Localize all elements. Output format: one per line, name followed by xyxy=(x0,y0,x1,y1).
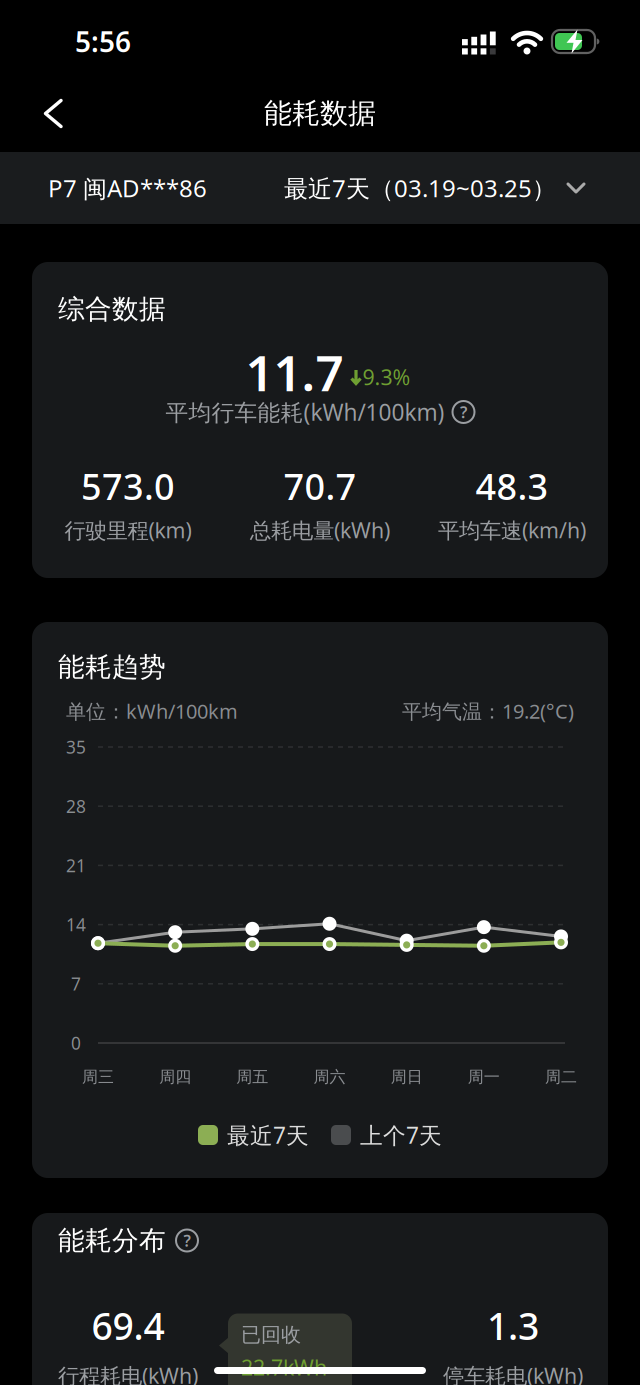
staticText: 周四 xyxy=(159,1067,191,1087)
staticText: 最近7天 xyxy=(227,1120,309,1150)
staticText: 行程耗电(kWh) xyxy=(58,1361,198,1385)
staticText: 平均气温：19.2(°C) xyxy=(402,698,574,724)
staticText: 已回收 xyxy=(241,1322,301,1347)
staticText: 48.3 xyxy=(475,462,548,510)
staticText: 7 xyxy=(71,972,81,995)
staticText: 9.3% xyxy=(362,363,410,391)
staticText: 周五 xyxy=(236,1067,268,1087)
staticText: 能耗分布 xyxy=(58,1224,166,1257)
staticText: 573.0 xyxy=(81,462,175,510)
staticText: ? xyxy=(460,401,467,423)
button[interactable]: Back xyxy=(0,76,64,150)
staticText: 平均车速(km/h) xyxy=(438,516,586,544)
staticText: 周日 xyxy=(391,1067,423,1087)
staticText: 0 xyxy=(71,1031,81,1054)
staticText: 单位：kWh/100km xyxy=(66,698,238,724)
staticText: 总耗电量(kWh) xyxy=(250,516,390,544)
staticText: 能耗趋势 xyxy=(58,651,166,683)
staticText: 35 xyxy=(66,735,86,758)
staticText: 28 xyxy=(66,795,86,818)
staticText: 周三 xyxy=(82,1067,114,1087)
staticText: 21 xyxy=(66,854,86,877)
button[interactable]: 帮助 xyxy=(176,1229,198,1251)
staticText: 1.3 xyxy=(487,1301,539,1350)
button[interactable]: 最近7天（03.19~03.25） xyxy=(284,172,640,204)
staticText: 最近7天（03.19~03.25） xyxy=(284,172,556,204)
button[interactable]: 帮助 xyxy=(452,401,474,423)
staticText: 综合数据 xyxy=(58,293,166,325)
staticText: 行驶里程(km) xyxy=(64,516,191,544)
staticText: 周六 xyxy=(313,1067,345,1087)
staticText: 上个7天 xyxy=(360,1120,442,1150)
staticText: 5:56 xyxy=(75,23,131,60)
staticText: ? xyxy=(183,1230,190,1251)
staticText: 周一 xyxy=(468,1067,500,1087)
staticText: 停车耗电(kWh) xyxy=(443,1361,583,1385)
staticText: 14 xyxy=(66,913,86,936)
staticText: 能耗数据 xyxy=(264,96,376,131)
staticText: 周二 xyxy=(545,1067,577,1087)
staticText: 平均行车能耗(kWh/100km) xyxy=(165,397,444,427)
staticText: 22.7kWh xyxy=(241,1353,327,1381)
staticText: 69.4 xyxy=(91,1301,164,1350)
staticText: 11.7 xyxy=(245,339,343,405)
staticText: 70.7 xyxy=(283,462,356,510)
staticText: P7 闽AD***86 xyxy=(48,172,207,204)
button[interactable]: P7 闽AD***86 xyxy=(0,172,207,204)
